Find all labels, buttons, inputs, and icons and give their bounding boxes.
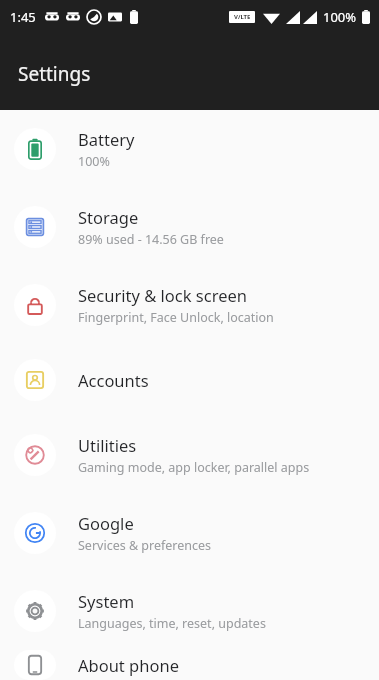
staticText: Battery [78,128,135,150]
other: Security and lock screen [24,294,46,316]
button[interactable]: Accounts [0,344,379,416]
staticText: 100% [323,8,357,26]
button[interactable]: System [0,572,379,650]
staticText: 1:45 [10,8,36,26]
staticText: Security & lock screen [78,284,247,306]
staticText: 89% used - 14.56 GB free [78,231,224,248]
button[interactable]: About phone [0,650,379,680]
button[interactable]: Security and lock screen [0,266,379,344]
staticText: Languages, time, reset, updates [78,615,266,632]
staticText: Accounts [78,369,149,391]
staticText: System [78,590,135,612]
other: Google [24,522,46,544]
other: About phone [24,654,46,676]
button[interactable]: Google [0,494,379,572]
staticText: About phone [78,654,179,676]
button[interactable]: Battery [0,110,379,188]
staticText: Utilities [78,434,137,456]
staticText: Google [78,512,134,534]
other: Utilities [24,444,46,466]
staticText: Services & preferences [78,537,212,554]
other: Storage [24,216,46,238]
staticText: Fingerprint, Face Unlock, location [78,309,274,326]
staticText: Storage [78,206,139,228]
button[interactable]: Storage [0,188,379,266]
other: Battery [24,138,46,160]
staticText: Gaming mode, app locker, parallel apps [78,459,310,476]
other: Accounts [24,369,46,391]
staticText: 100% [78,153,110,170]
staticText: V/LTE [234,13,251,21]
staticText: Settings [18,61,91,87]
other: System [24,600,46,622]
button[interactable]: Utilities [0,416,379,494]
